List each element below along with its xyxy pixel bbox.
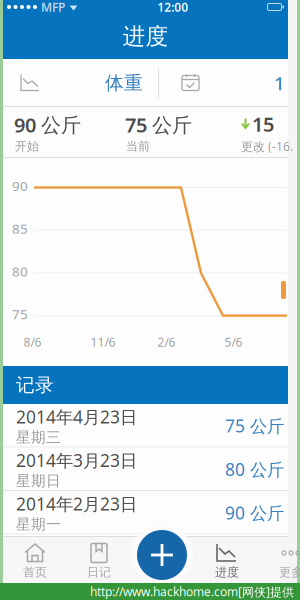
staticText: 2014年3月23日 — [16, 449, 137, 472]
staticText: 当前 — [126, 139, 150, 154]
button[interactable]: 首页 — [3, 536, 67, 583]
staticText: 11/6 — [90, 334, 115, 350]
button[interactable]: 2014年4月23日 — [3, 404, 288, 447]
staticText: 记录 — [16, 373, 54, 396]
staticText: 2014年4月23日 — [16, 405, 137, 428]
staticText: 90 — [12, 177, 28, 195]
staticText: 日记 — [87, 565, 111, 580]
staticText: 12:00 — [157, 0, 188, 15]
button[interactable]: 日记 — [67, 536, 131, 583]
staticText: 5/6 — [224, 334, 242, 350]
staticText: 进度 — [122, 23, 168, 50]
staticText: 80 公斤 — [225, 458, 284, 481]
staticText: http://www.hackhome.com[网侠]提供 — [90, 583, 294, 599]
button[interactable]: 体重 — [3, 59, 158, 107]
staticText: 90 公斤 — [225, 501, 284, 524]
staticText: 1 — [274, 71, 285, 95]
staticText: 85 — [12, 220, 28, 237]
staticText: 2/6 — [157, 334, 175, 350]
staticText: 更改 (-16. — [241, 138, 293, 154]
staticText: 开始 — [15, 139, 39, 154]
staticText: 75 公斤 — [125, 111, 192, 138]
staticText: 80 — [12, 262, 28, 280]
staticText: 星期一 — [16, 515, 61, 533]
button[interactable]: 2014年3月23日 — [3, 447, 288, 491]
staticText: 2014年2月23日 — [16, 492, 137, 515]
staticText: 体重 — [105, 71, 143, 94]
staticText: 星期三 — [16, 428, 61, 446]
button[interactable]: 2014年2月23日 — [3, 491, 288, 534]
staticText: MFP — [41, 0, 65, 15]
staticText: 进度 — [215, 565, 239, 580]
staticText: 90 公斤 — [14, 111, 81, 138]
staticText: 15 — [252, 111, 274, 137]
staticText: 75 — [12, 305, 28, 323]
staticText: 75 公斤 — [225, 414, 284, 437]
staticText: 8/6 — [23, 334, 41, 350]
button[interactable]: 更多 — [259, 536, 300, 583]
staticText: 更多 — [279, 565, 300, 580]
button[interactable]: 1 — [159, 59, 288, 107]
button[interactable]: Add entry — [131, 524, 193, 586]
staticText: 首页 — [23, 565, 47, 580]
staticText: 星期日 — [16, 472, 61, 490]
button[interactable]: 进度 — [195, 536, 259, 583]
